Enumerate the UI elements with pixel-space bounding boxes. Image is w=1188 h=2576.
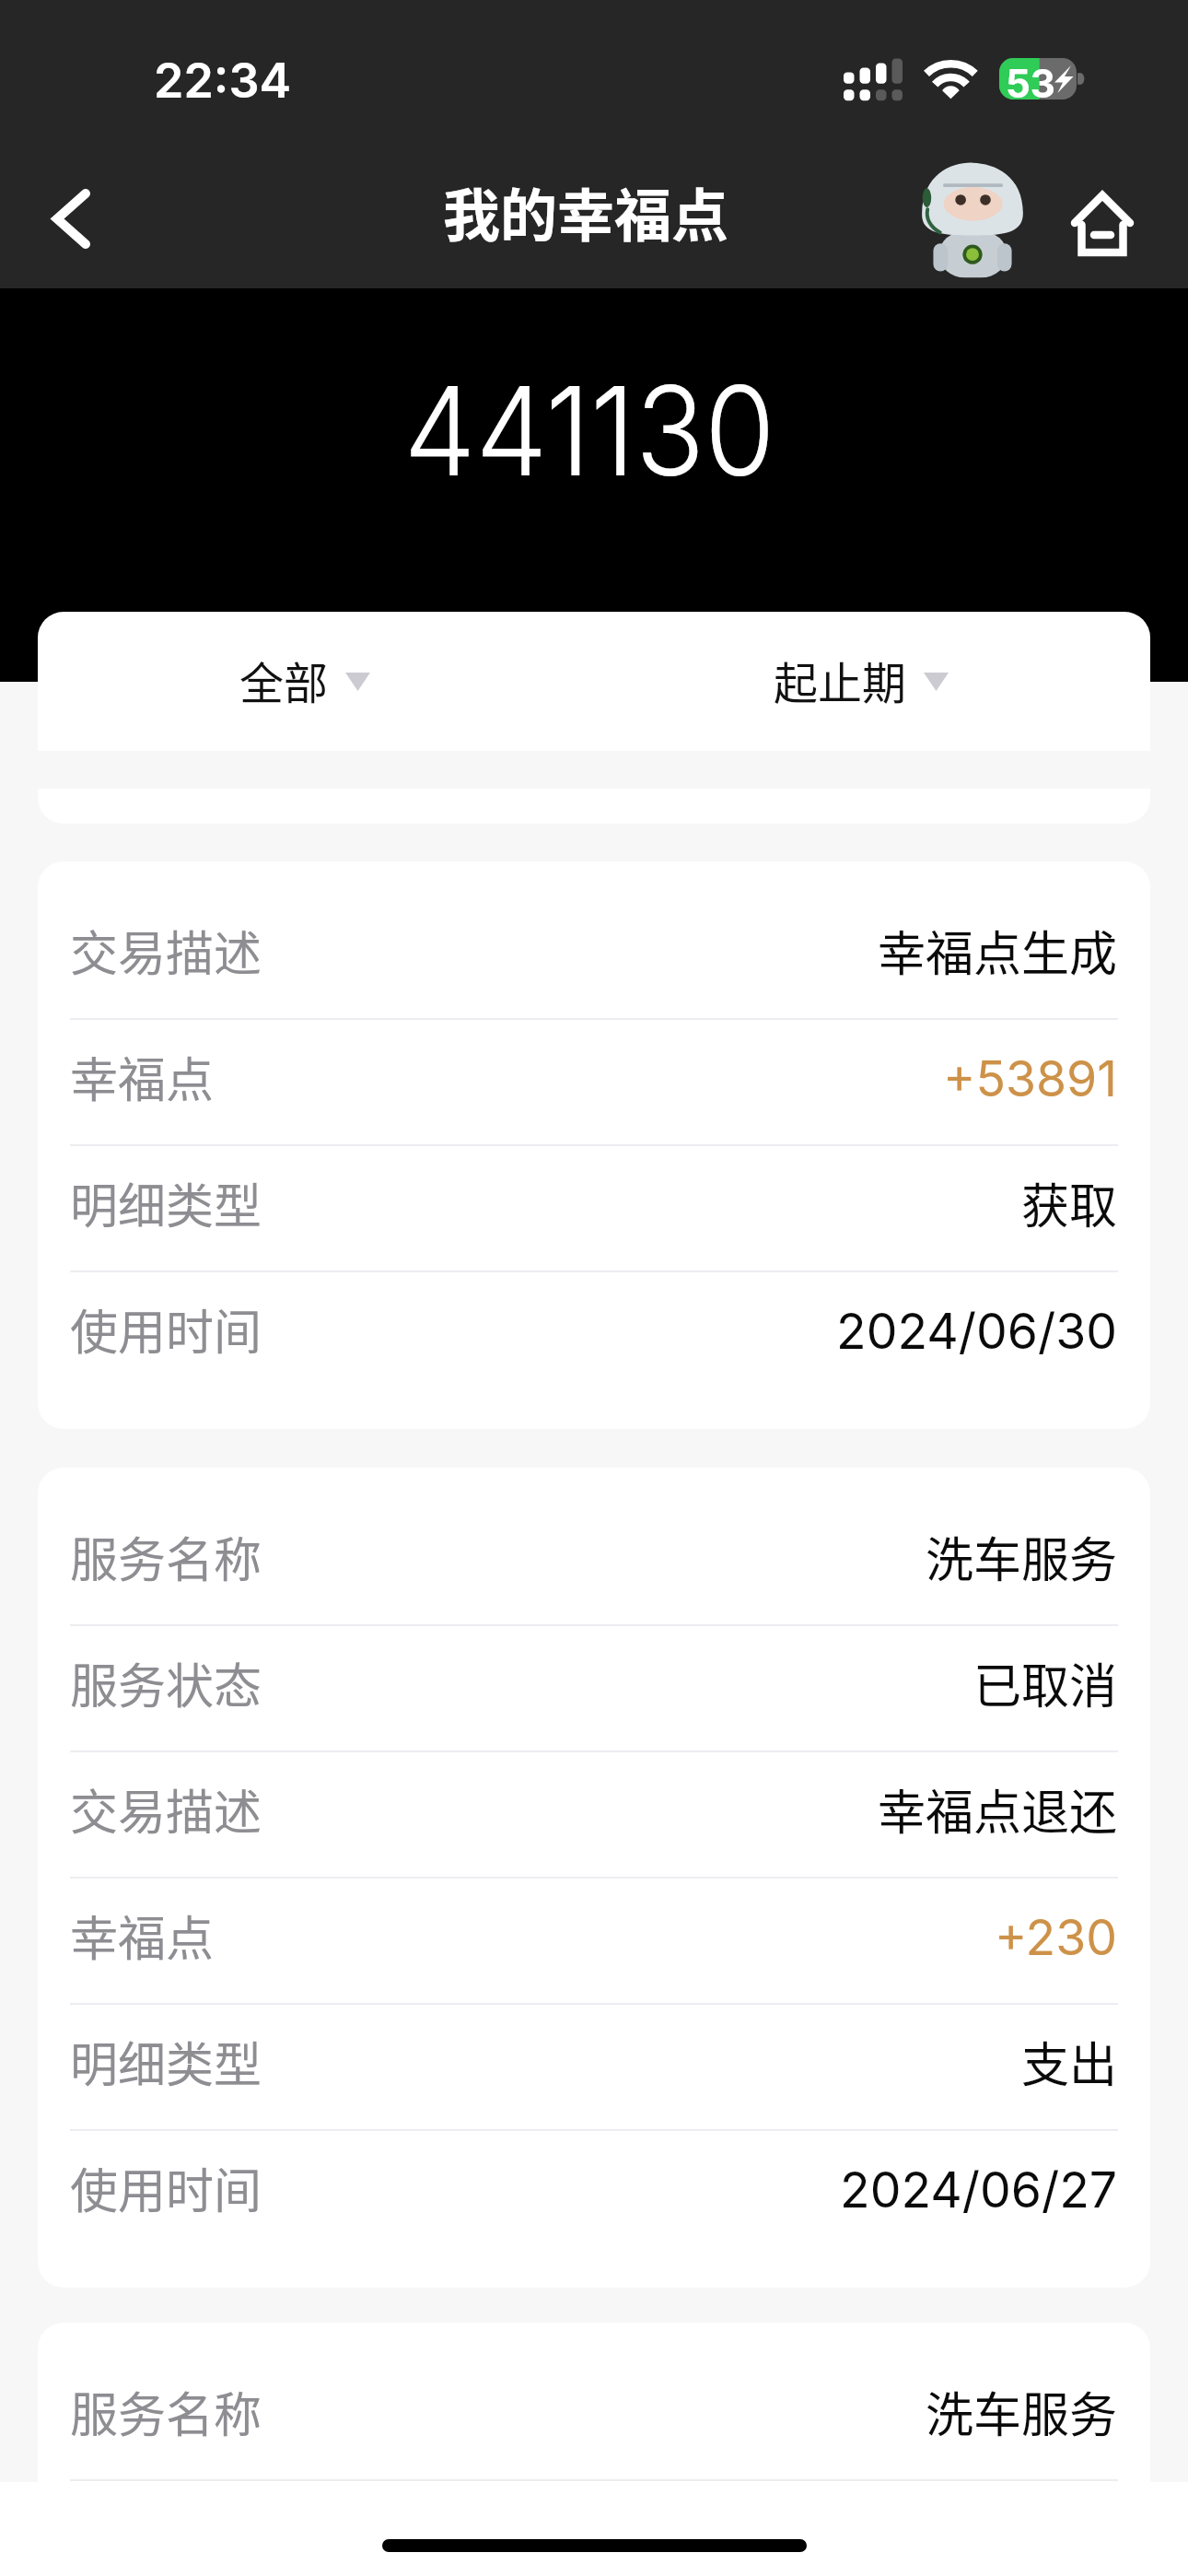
button[interactable]: 幸福点 [38,1020,1150,1144]
staticText: 洗车服务 [926,2377,1118,2446]
button[interactable]: 交易描述 [38,894,1150,1018]
button[interactable]: 使用时间 [38,2131,1150,2255]
staticText: 已取消 [973,1648,1118,1717]
staticText: 441130 [40,356,1139,505]
button[interactable]: 服务名称 [38,1500,1150,1624]
staticText: 使用时间 [70,2153,262,2222]
staticText: +53891 [943,1048,1118,1108]
staticText: 2024/06/27 [840,2160,1118,2219]
staticText: 起止期 [774,648,907,712]
staticText: 幸福点 [70,1901,215,1970]
button[interactable]: 明细类型 [38,1146,1150,1270]
button[interactable]: 服务名称 [38,2355,1150,2479]
button[interactable]: Back [11,166,122,272]
staticText: 全部 [239,648,329,712]
button[interactable]: 交易描述 [38,1752,1150,1877]
staticText: 支出 [1021,2027,1118,2096]
button[interactable]: 使用时间 [38,1272,1150,1397]
staticText: 幸福点退还 [878,1774,1118,1844]
staticText: 53 [1006,60,1055,102]
staticText: 获取 [1021,1168,1118,1237]
button[interactable]: Assistant [921,162,1024,278]
staticText: 我的幸福点 [443,170,729,253]
staticText: 使用时间 [70,1294,262,1364]
button[interactable]: 起止期 [763,637,960,727]
staticText: 交易描述 [70,916,262,985]
button[interactable]: 全部 [228,637,381,727]
button[interactable]: 幸福点 [38,1879,1150,2003]
staticText: 洗车服务 [926,1522,1118,1591]
staticText: 幸福点 [70,1042,215,1111]
staticText: +230 [995,1907,1118,1967]
staticText: 服务名称 [70,1522,262,1591]
staticText: 服务状态 [70,1648,262,1717]
button[interactable]: 服务状态 [38,2481,1150,2576]
button[interactable]: 服务状态 [38,1626,1150,1751]
staticText: 幸福点生成 [878,916,1118,985]
staticText: 明细类型 [70,2027,262,2096]
staticText: 22:34 [154,52,292,110]
button[interactable]: 明细类型 [38,2005,1150,2129]
button[interactable]: Home [1059,181,1146,265]
staticText: 2024/06/30 [836,1301,1118,1361]
staticText: 服务名称 [70,2377,262,2446]
staticText: 明细类型 [70,1168,262,1237]
staticText: 交易描述 [70,1774,262,1844]
